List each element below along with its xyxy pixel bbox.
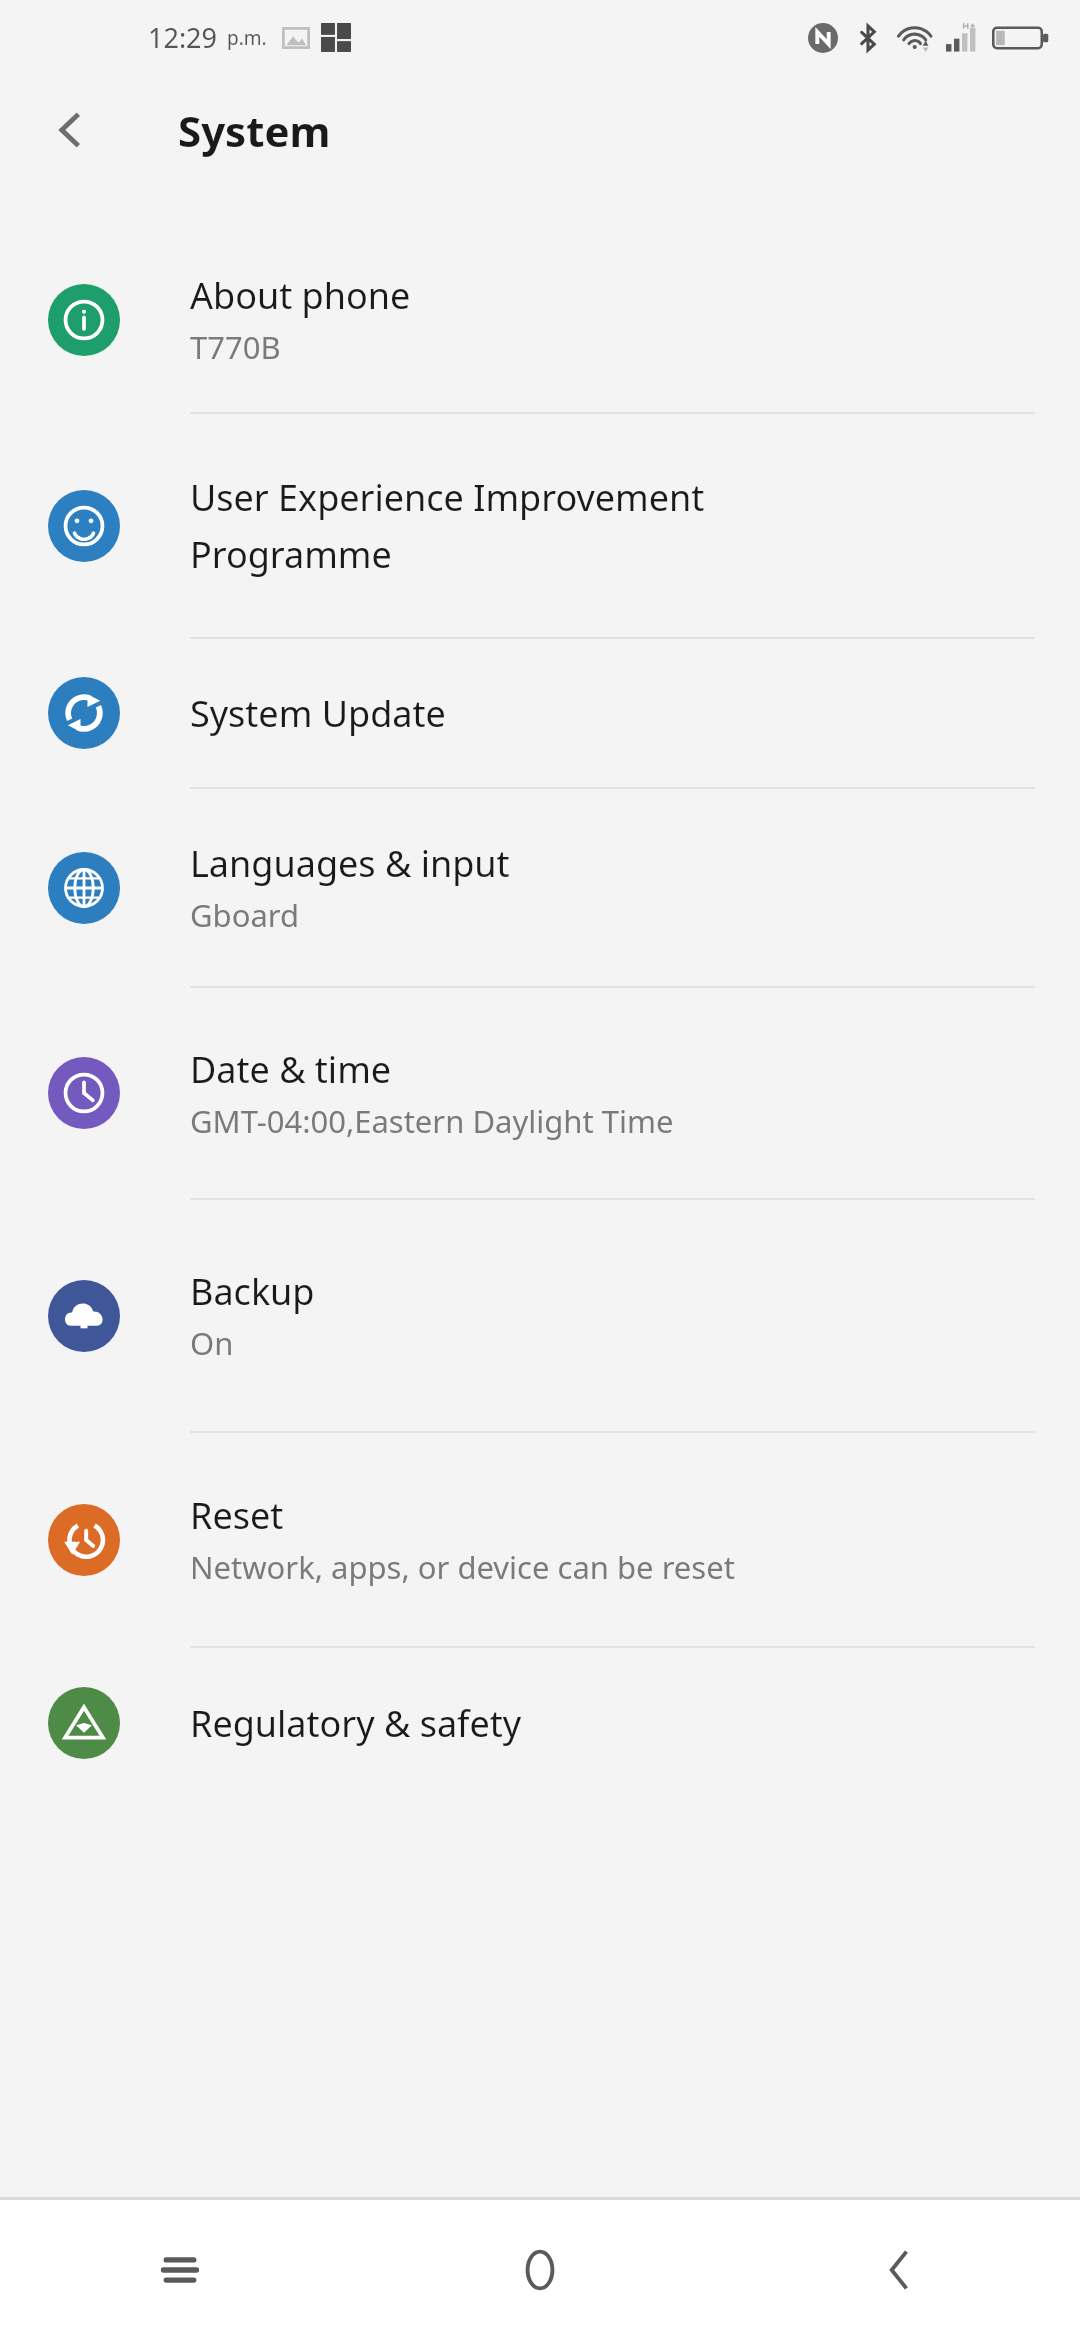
- button[interactable]: User Experience Improvement Programme: [0, 414, 1080, 637]
- staticText: User Experience Improvement Programme: [190, 473, 705, 579]
- staticText: On: [190, 1322, 234, 1364]
- staticText: 12:29: [148, 19, 218, 56]
- button[interactable]: Back: [720, 2200, 1080, 2340]
- staticText: Regulatory & safety: [190, 1699, 522, 1748]
- button[interactable]: About phone: [0, 227, 1080, 412]
- button[interactable]: Languages & input: [0, 789, 1080, 986]
- staticText: Date & time: [190, 1045, 392, 1094]
- staticText: Reset: [190, 1491, 284, 1540]
- staticText: Gboard: [190, 894, 300, 936]
- button[interactable]: Reset: [0, 1433, 1080, 1646]
- staticText: About phone: [190, 271, 411, 320]
- button[interactable]: Home: [360, 2200, 720, 2340]
- staticText: System Update: [190, 689, 446, 738]
- button[interactable]: Backup: [0, 1200, 1080, 1431]
- staticText: GMT-04:00,Eastern Daylight Time: [190, 1100, 674, 1142]
- staticText: Network, apps, or device can be reset: [190, 1546, 735, 1588]
- button[interactable]: Regulatory & safety: [0, 1648, 1080, 1798]
- staticText: T770B: [190, 326, 281, 368]
- staticText: System: [178, 102, 331, 159]
- staticText: p.m.: [227, 25, 267, 51]
- button[interactable]: Back: [38, 97, 104, 163]
- staticText: Backup: [190, 1267, 315, 1316]
- staticText: Languages & input: [190, 839, 510, 888]
- button[interactable]: Date & time: [0, 988, 1080, 1198]
- button[interactable]: Recent apps: [0, 2200, 360, 2340]
- button[interactable]: System Update: [0, 639, 1080, 787]
